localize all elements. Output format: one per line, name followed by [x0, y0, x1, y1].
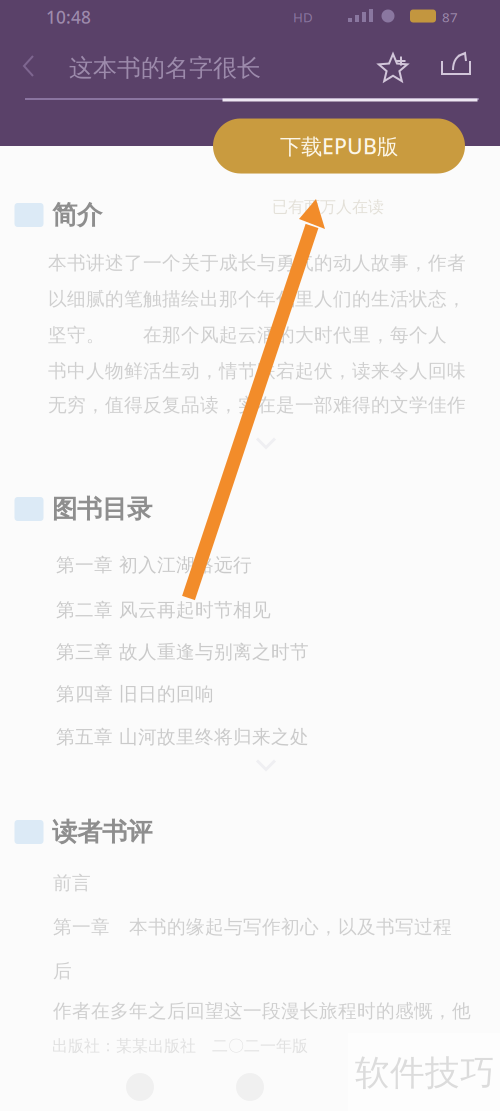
button[interactable]: 下载EPUB版	[213, 118, 465, 173]
staticText: 这本书的名字很长	[69, 53, 261, 83]
staticText: 87	[442, 8, 458, 26]
button[interactable]: 第二章 风云再起时节相见	[0, 0, 500, 1111]
staticText: 前言	[53, 871, 91, 894]
staticText: 第一章 本书的缘起与写作初心，以及书写过程	[53, 915, 452, 938]
button[interactable]: Add to bookshelf	[372, 45, 414, 89]
button[interactable]: 第四章 旧日的回响	[0, 0, 500, 1111]
staticText: 无穷，值得反复品读，实在是一部难得的文学佳作	[48, 393, 466, 416]
button[interactable]: Back	[15, 49, 51, 85]
staticText: 出版社：某某出版社 二〇二一年版	[52, 1036, 308, 1056]
button[interactable]: Share	[437, 53, 475, 83]
staticText: 第五章 山河故里终将归来之处	[56, 725, 309, 748]
staticText: 第三章 故人重逢与别离之时节	[56, 640, 309, 663]
staticText: 读者书评	[52, 816, 152, 847]
staticText: 已有两万人在读	[272, 197, 384, 217]
staticText: 第二章 风云再起时节相见	[56, 598, 271, 621]
staticText: 10:48	[46, 5, 91, 28]
staticText: 本书讲述了一个关于成长与勇气的动人故事，作者	[48, 251, 466, 274]
staticText: 简介	[52, 199, 102, 230]
staticText: 书中人物鲜活生动，情节跌宕起伏，读来令人回味	[48, 359, 466, 382]
button[interactable]: 第一章 初入江湖路远行	[0, 0, 500, 1111]
staticText: 作者在多年之后回望这一段漫长旅程时的感慨，他	[53, 999, 471, 1022]
button[interactable]: 第三章 故人重逢与别离之时节	[0, 0, 500, 1111]
staticText: 后	[53, 959, 72, 982]
staticText: 图书目录	[52, 493, 152, 524]
staticText: 下载EPUB版	[280, 132, 398, 160]
staticText: 第四章 旧日的回响	[56, 682, 214, 705]
staticText: HD	[293, 8, 313, 26]
staticText: 坚守。 在那个风起云涌的大时代里，每个人	[48, 323, 447, 346]
button[interactable]: 这本书的名字很长	[69, 53, 261, 83]
staticText: 第一章 初入江湖路远行	[56, 553, 252, 576]
staticText: 以细腻的笔触描绘出那个年代里人们的生活状态，	[48, 287, 466, 310]
staticText: 软件技巧	[355, 1052, 495, 1094]
button[interactable]: 第五章 山河故里终将归来之处	[0, 0, 500, 1111]
